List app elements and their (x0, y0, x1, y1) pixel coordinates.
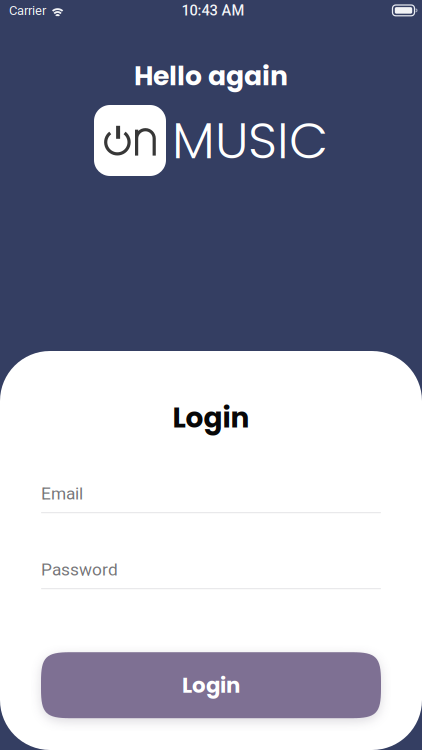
staticText: Password (41, 559, 118, 580)
button[interactable]: Login (41, 652, 381, 718)
staticText: 10:43 AM (181, 2, 244, 19)
staticText: MUSIC (172, 105, 328, 176)
staticText: Login (182, 670, 240, 700)
staticText: Email (41, 483, 83, 504)
staticText: Login (172, 398, 249, 437)
staticText: Carrier (9, 3, 46, 18)
staticText: Hello again (134, 57, 288, 95)
